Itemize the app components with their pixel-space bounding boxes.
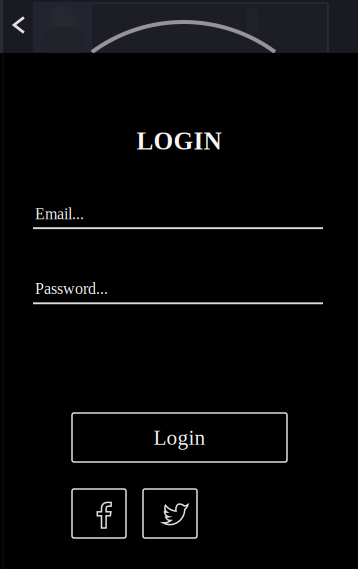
staticText: Login — [153, 426, 205, 449]
staticText: Email... — [35, 205, 84, 223]
button[interactable]: Back — [0, 0, 38, 38]
staticText: LOGIN — [136, 127, 221, 155]
staticText: Password... — [35, 280, 108, 297]
button[interactable]: Sign in with Facebook — [72, 489, 126, 538]
button[interactable]: Sign in with Twitter — [143, 489, 197, 538]
button[interactable]: Login — [72, 413, 287, 462]
